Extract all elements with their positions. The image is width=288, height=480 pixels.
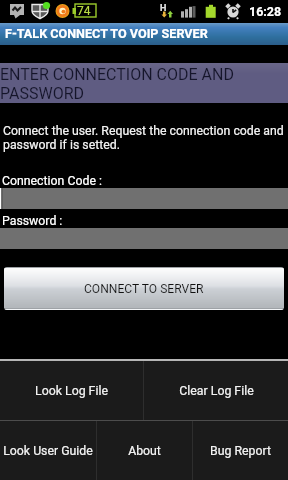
button[interactable]: Bug Report [193, 421, 288, 480]
staticText: 74 [77, 4, 91, 18]
button[interactable]: Look Log File [0, 361, 143, 420]
staticText: Connection Code : [2, 174, 102, 188]
staticText: About [128, 444, 161, 458]
staticText: 16:28 [249, 4, 282, 19]
button[interactable] [0, 188, 288, 209]
staticText: Password : [2, 214, 63, 228]
button[interactable]: Clear Log File [144, 361, 288, 420]
staticText: F-TALK CONNECT TO VOIP SERVER [5, 26, 208, 41]
staticText: Look Log File [35, 384, 108, 398]
button[interactable]: Look User Guide [0, 421, 96, 480]
staticText: Clear Log File [179, 384, 254, 398]
staticText: Look User Guide [3, 444, 93, 458]
staticText: ENTER CONNECTION CODE AND PASSWORD [0, 65, 248, 103]
staticText: CONNECT TO SERVER [84, 282, 204, 296]
staticText: Bug Report [210, 444, 271, 458]
staticText: Connect the user. Request the connection… [3, 124, 288, 152]
button[interactable]: CONNECT TO SERVER [4, 267, 284, 310]
staticText: H [160, 3, 167, 14]
button[interactable]: About [97, 421, 192, 480]
